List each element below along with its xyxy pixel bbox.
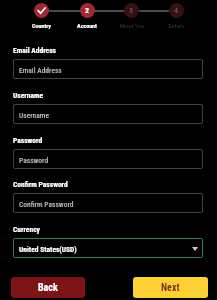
button[interactable]: Confirm Password bbox=[13, 193, 203, 213]
staticText: About You bbox=[119, 22, 144, 29]
button[interactable]: Details bbox=[169, 3, 184, 18]
button[interactable]: Username bbox=[13, 104, 203, 124]
button[interactable]: United States(USD) bbox=[13, 238, 203, 258]
button[interactable]: Country bbox=[34, 3, 49, 18]
staticText: Password bbox=[19, 156, 49, 165]
staticText: Confirm Password bbox=[13, 180, 68, 189]
staticText: Confirm Password bbox=[19, 200, 74, 209]
staticText: Username bbox=[13, 91, 44, 100]
staticText: Details bbox=[168, 22, 185, 29]
staticText: Username bbox=[19, 111, 49, 120]
staticText: Email Address bbox=[19, 66, 62, 75]
staticText: 3 bbox=[129, 6, 134, 15]
staticText: 2 bbox=[85, 6, 90, 15]
staticText: Email Address bbox=[13, 46, 57, 55]
staticText: 4 bbox=[174, 6, 179, 15]
button[interactable]: Back bbox=[11, 277, 85, 298]
staticText: Next bbox=[161, 282, 180, 294]
button[interactable]: About You bbox=[124, 3, 139, 18]
staticText: Back bbox=[38, 282, 58, 294]
button[interactable]: Next bbox=[133, 277, 208, 298]
staticText: Password bbox=[13, 136, 43, 145]
button[interactable]: Password bbox=[13, 149, 203, 169]
staticText: Account bbox=[77, 22, 97, 29]
staticText: Country bbox=[32, 22, 51, 29]
button[interactable]: Account bbox=[80, 3, 95, 18]
staticText: United States(USD) bbox=[19, 245, 77, 254]
staticText: Currency bbox=[13, 225, 40, 234]
button[interactable]: Email Address bbox=[13, 59, 203, 79]
